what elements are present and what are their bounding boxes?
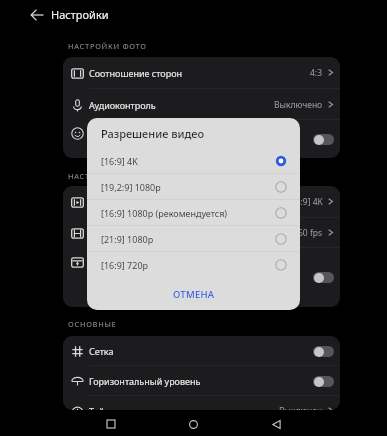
staticText: Частота кадров — [89, 227, 157, 239]
button[interactable]: Recent apps — [98, 411, 124, 436]
staticText: 4:3 — [310, 67, 323, 79]
staticText: Выключено — [274, 99, 323, 111]
button[interactable]: Сетка — [63, 336, 340, 366]
staticText: 60 fps — [298, 227, 323, 239]
button[interactable]: Разрешение видео — [63, 186, 340, 218]
button[interactable]: Соотношение сторон — [63, 57, 340, 89]
button[interactable]: Home — [180, 411, 206, 436]
staticText: [16:9] 4K — [288, 196, 323, 208]
button[interactable]: ОТМЕНА — [87, 282, 300, 306]
button[interactable]: [16:9] 720p — [87, 252, 300, 278]
staticText: Аудиоконтроль — [89, 99, 156, 111]
button[interactable]: [19,2:9] 1080p — [87, 174, 300, 200]
staticText: [16:9] 1080p (рекомендуется) — [101, 207, 228, 219]
staticText: ОСНОВНЫЕ — [68, 319, 117, 329]
button[interactable]: Горизонтальный уровень — [63, 366, 340, 396]
button[interactable]: Улыбка — [63, 120, 340, 158]
button[interactable]: [16:9] 4K — [87, 148, 300, 174]
staticText: [19,2:9] 1080p — [101, 181, 161, 193]
staticText: Стабилизация — [89, 256, 152, 268]
staticText: [16:9] 4K — [101, 155, 138, 167]
staticText: [21:9] 1080p — [101, 233, 154, 245]
staticText: Таймер — [89, 405, 122, 410]
staticText: [16:9] 720p — [101, 259, 149, 271]
staticText: НАСТРОЙКИ ВИДЕО — [68, 171, 152, 181]
staticText: Горизонтальный уровень — [89, 375, 201, 387]
button[interactable]: Back — [263, 411, 289, 436]
button[interactable]: [16:9] 1080p (рекомендуется) — [87, 200, 300, 226]
button[interactable]: Стабилизация — [63, 248, 340, 307]
button[interactable]: Аудиоконтроль — [63, 89, 340, 120]
staticText: Разрешение видео — [101, 126, 205, 141]
button[interactable]: [21:9] 1080p — [87, 226, 300, 252]
button[interactable]: Таймер — [63, 396, 340, 410]
staticText: Соотношение сторон — [89, 67, 183, 79]
staticText: Выключен — [279, 405, 323, 410]
button[interactable]: Частота кадров — [63, 218, 340, 248]
staticText: Улыбка — [89, 127, 122, 139]
staticText: НАСТРОЙКИ ФОТО — [68, 41, 147, 51]
staticText: Настройки — [51, 7, 109, 22]
staticText: Сетка — [89, 345, 114, 357]
button[interactable]: Back — [26, 4, 48, 26]
staticText: ОТМЕНА — [173, 288, 215, 301]
